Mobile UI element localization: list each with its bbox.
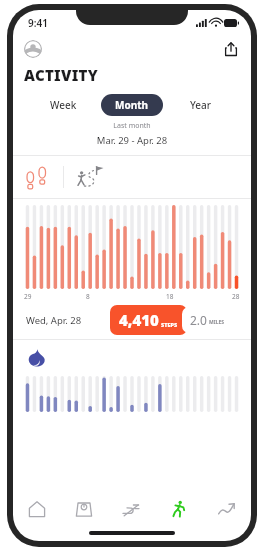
staticText: ACTIVITY: [24, 65, 99, 85]
button[interactable]: Calories: [27, 348, 47, 368]
staticText: Year: [190, 98, 212, 112]
staticText: Mar. 29 - Apr. 28: [13, 134, 251, 147]
staticText: 2.0: [190, 312, 207, 328]
button[interactable]: Trends: [203, 493, 251, 525]
button[interactable]: 4,410: [110, 305, 187, 335]
staticText: 28: [232, 292, 240, 301]
button[interactable]: Activity: [155, 493, 203, 525]
staticText: 8: [86, 292, 90, 301]
staticText: Week: [50, 98, 77, 112]
staticText: 29: [24, 292, 32, 301]
button[interactable]: Week: [29, 98, 97, 112]
staticText: STEPS: [161, 321, 178, 328]
button[interactable]: Steps: [26, 164, 52, 190]
staticText: Last month: [13, 121, 251, 131]
button[interactable]: Month: [101, 94, 163, 116]
staticText: 9:41: [28, 16, 48, 30]
staticText: MILES: [209, 319, 225, 326]
button[interactable]: Year: [166, 98, 235, 112]
button[interactable]: Profile: [24, 40, 42, 58]
button[interactable]: Sleep: [107, 493, 155, 525]
staticText: 18: [166, 292, 174, 301]
button[interactable]: Share: [222, 40, 240, 58]
button[interactable]: Home: [13, 493, 60, 525]
button[interactable]: Weight: [60, 493, 107, 525]
button[interactable]: 2.0: [182, 307, 233, 333]
button[interactable]: Workouts: [75, 164, 105, 190]
staticText: 4,410: [119, 310, 159, 330]
staticText: Wed, Apr. 28: [26, 314, 82, 327]
staticText: Month: [115, 98, 149, 112]
